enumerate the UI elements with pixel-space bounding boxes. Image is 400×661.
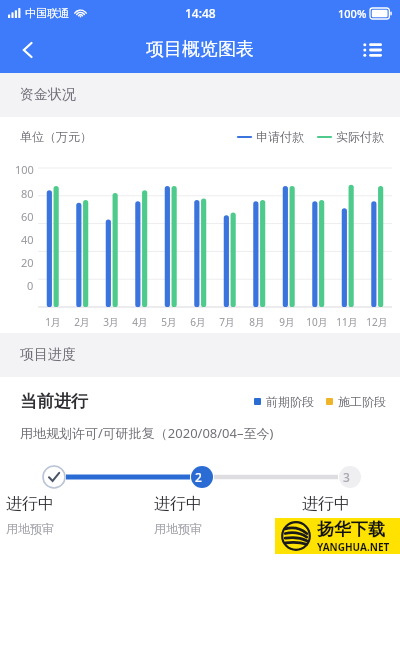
staticText: 14:48 — [185, 5, 216, 21]
staticText: 0 — [27, 278, 34, 293]
staticText: 前期阶段 — [266, 394, 314, 409]
staticText: 7月 — [219, 315, 235, 329]
staticText: 40 — [21, 232, 34, 247]
staticText: 用地预审 — [6, 521, 54, 536]
staticText: YANGHUA.NET — [317, 540, 390, 554]
staticText: 100% — [338, 6, 367, 21]
staticText: 60 — [21, 209, 34, 224]
staticText: 3 — [343, 469, 350, 485]
staticText: 5月 — [161, 315, 177, 329]
staticText: 2月 — [74, 315, 90, 329]
staticText: 11月 — [336, 315, 358, 329]
staticText: 3月 — [103, 315, 119, 329]
staticText: 12月 — [366, 315, 388, 329]
staticText: 项目进度 — [20, 346, 76, 364]
button[interactable]: Menu list — [350, 28, 394, 72]
button[interactable]: Back — [6, 28, 50, 72]
staticText: 4月 — [132, 315, 148, 329]
staticText: 资金状况 — [20, 86, 76, 104]
staticText: 当前进行 — [20, 391, 88, 412]
staticText: 80 — [21, 186, 34, 201]
staticText: 1月 — [45, 315, 61, 329]
staticText: 中国联通 — [25, 6, 69, 20]
staticText: 进行中 — [6, 494, 54, 514]
staticText: 进行中 — [302, 494, 350, 514]
staticText: 进行中 — [154, 494, 202, 514]
staticText: 20 — [21, 255, 34, 270]
staticText: 100 — [15, 162, 34, 177]
staticText: 申请付款 — [256, 129, 304, 144]
staticText: 单位（万元） — [20, 129, 92, 144]
button[interactable]: 进行中 — [0, 494, 350, 536]
staticText: 施工阶段 — [338, 394, 386, 409]
staticText: 扬华下载 — [317, 519, 385, 540]
button[interactable]: 进行中 — [0, 494, 202, 536]
staticText: 实际付款 — [336, 129, 384, 144]
staticText: 2 — [195, 469, 202, 485]
staticText: 用地预审 — [154, 521, 202, 536]
staticText: 项目概览图表 — [146, 38, 254, 61]
button[interactable]: 进行中 — [0, 494, 54, 536]
staticText: 用地规划许可/可研批复（2020/08/04–至今) — [20, 424, 274, 442]
staticText: 9月 — [279, 315, 295, 329]
staticText: 8月 — [249, 315, 265, 329]
staticText: 10月 — [306, 315, 328, 329]
staticText: 6月 — [190, 315, 206, 329]
staticText: 用地预审 — [302, 521, 350, 536]
